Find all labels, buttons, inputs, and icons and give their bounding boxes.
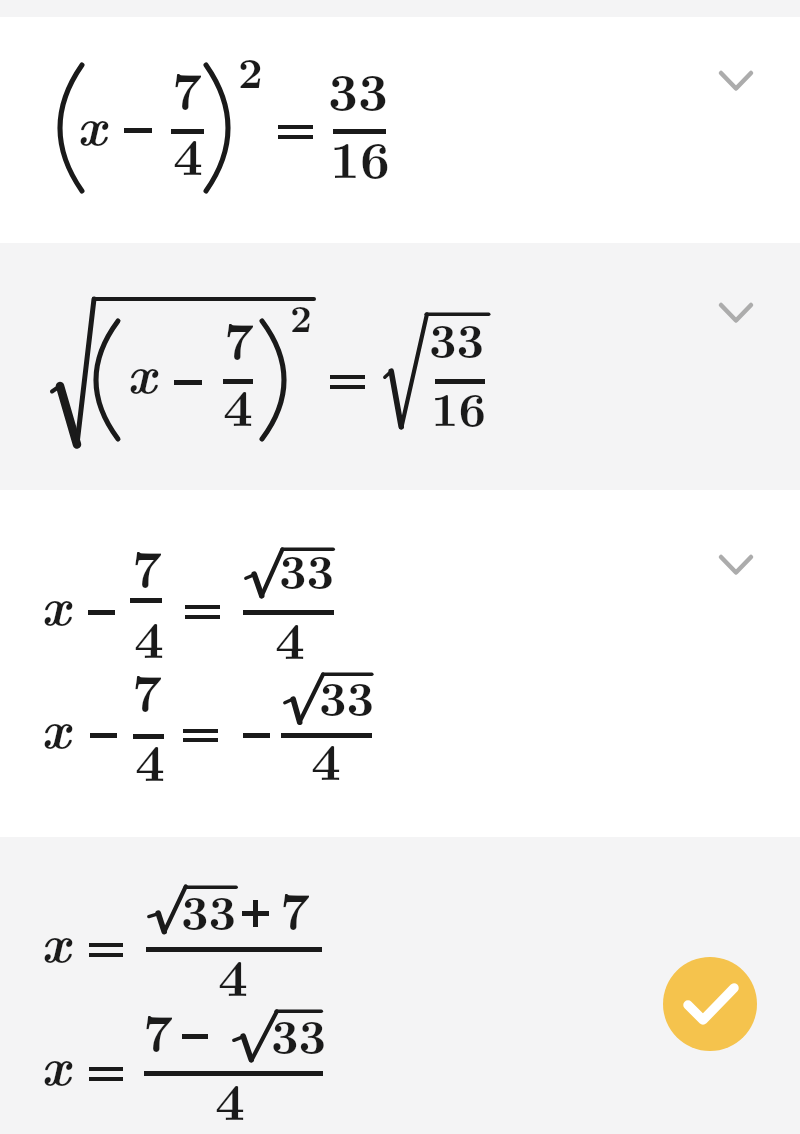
staticText: 4	[134, 599, 164, 673]
staticText: 7	[280, 870, 310, 944]
staticText: 4	[275, 600, 305, 674]
staticText: x	[41, 688, 71, 764]
staticText: 7	[132, 652, 162, 726]
staticText: x	[77, 85, 107, 161]
staticText: 4	[223, 367, 253, 441]
staticText: 7	[132, 528, 162, 602]
button[interactable]	[663, 957, 757, 1051]
button[interactable]	[0, 17, 800, 243]
staticText: 33	[181, 875, 237, 944]
staticText: 33	[319, 661, 375, 730]
staticText: 16	[431, 372, 487, 441]
button[interactable]	[0, 490, 800, 837]
staticText: x	[127, 333, 157, 409]
staticText: 7	[224, 300, 254, 374]
staticText: 33	[279, 534, 335, 603]
staticText: 33	[271, 999, 327, 1068]
staticText: 33	[429, 303, 485, 372]
staticText: x	[41, 902, 71, 978]
staticText: 4	[311, 721, 341, 795]
staticText: 16	[330, 119, 390, 193]
staticText: x	[41, 1025, 71, 1101]
staticText: 7	[172, 50, 202, 124]
button[interactable]	[0, 837, 800, 1134]
staticText: 2	[290, 289, 312, 343]
staticText: 7	[143, 992, 173, 1066]
staticText: 4	[215, 1061, 245, 1134]
staticText: 4	[135, 722, 165, 796]
staticText: 2	[238, 39, 263, 100]
staticText: 4	[173, 116, 203, 190]
button[interactable]	[0, 243, 800, 490]
staticText: x	[41, 565, 71, 641]
staticText: 4	[218, 937, 248, 1011]
staticText: 33	[328, 51, 388, 125]
